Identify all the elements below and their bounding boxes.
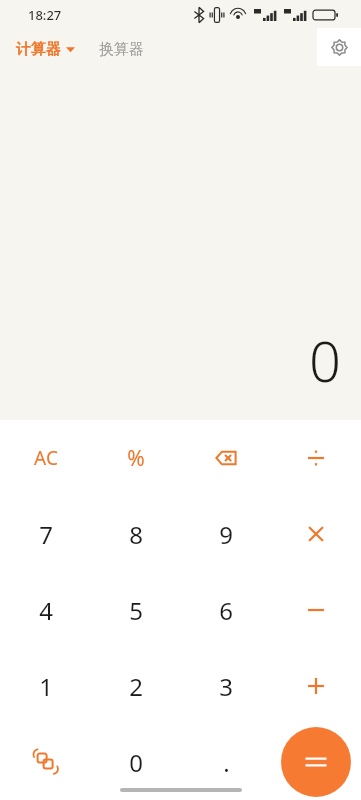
staticText: 3 — [219, 670, 233, 703]
button[interactable]: Plus — [271, 648, 361, 724]
staticText: 8 — [129, 518, 143, 551]
button[interactable]: 5 — [91, 572, 181, 648]
staticText: . — [223, 746, 230, 779]
staticText: 换算器 — [99, 40, 144, 59]
button[interactable]: 换算器 — [99, 40, 144, 59]
staticText: % — [127, 444, 145, 473]
button[interactable]: 2 — [91, 648, 181, 724]
staticText: AC — [34, 445, 58, 471]
staticText: 0 — [129, 746, 143, 779]
staticText: 4 — [39, 594, 53, 627]
staticText: 0 — [309, 322, 341, 398]
button[interactable]: . — [181, 724, 271, 800]
staticText: 2 — [129, 670, 143, 703]
staticText: 5 — [129, 594, 143, 627]
button[interactable]: 1 — [0, 648, 91, 724]
button[interactable]: 3 — [181, 648, 271, 724]
staticText: 18:27 — [28, 6, 62, 24]
staticText: 1 — [39, 670, 53, 703]
staticText: 6 — [219, 594, 233, 627]
button[interactable]: 8 — [91, 496, 181, 572]
button[interactable]: 6 — [181, 572, 271, 648]
button[interactable]: 7 — [0, 496, 91, 572]
button[interactable]: 4 — [0, 572, 91, 648]
button[interactable]: 9 — [181, 496, 271, 572]
staticText: 7 — [39, 518, 53, 551]
button[interactable]: AC — [0, 420, 91, 496]
button[interactable]: Multiply — [271, 496, 361, 572]
button[interactable]: Divide — [271, 420, 361, 496]
button[interactable]: 0 — [91, 724, 181, 800]
staticText: 计算器 — [16, 40, 61, 59]
button[interactable]: 计算器 — [16, 40, 75, 59]
staticText: 9 — [219, 518, 233, 551]
button[interactable]: Backspace — [181, 420, 271, 496]
button[interactable]: Settings — [317, 28, 361, 66]
button[interactable]: Equals — [281, 727, 351, 797]
button[interactable]: Convert units — [0, 724, 91, 800]
button[interactable]: Minus — [271, 572, 361, 648]
button[interactable]: % — [91, 420, 181, 496]
